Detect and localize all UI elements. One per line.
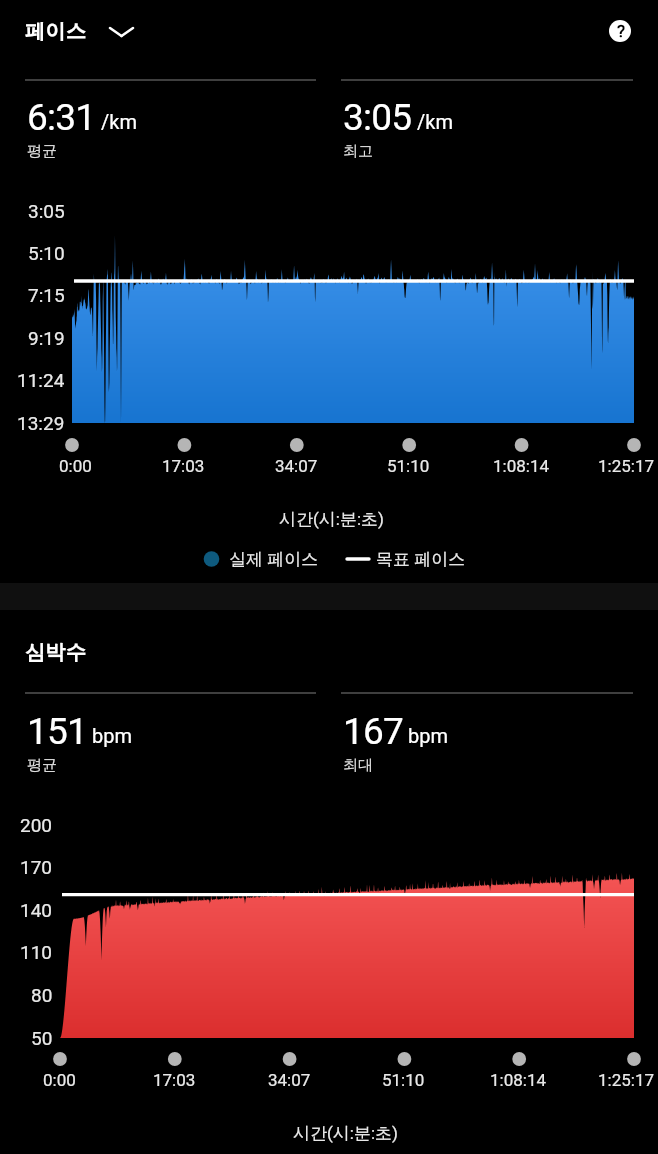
staticText: 목표 페이스 (376, 549, 466, 570)
staticText: 11:24 (17, 369, 65, 391)
staticText: 110 (20, 941, 53, 963)
button[interactable]: Help (598, 9, 642, 53)
staticText: 1:08:14 (493, 456, 550, 476)
staticText: 5:10 (28, 242, 65, 264)
staticText: 17:03 (153, 1070, 196, 1090)
staticText: 200 (20, 814, 53, 836)
staticText: 0:00 (59, 456, 92, 476)
staticText: 17:03 (162, 456, 205, 476)
staticText: 9:19 (28, 327, 65, 349)
staticText: 심박수 (25, 639, 86, 665)
staticText: bpm (408, 724, 448, 747)
staticText: 80 (31, 984, 53, 1006)
button[interactable]: 실제 페이스 (200, 545, 313, 574)
staticText: 34:07 (275, 456, 318, 476)
staticText: 1:25:17 (598, 1070, 655, 1090)
staticText: /km (417, 110, 453, 133)
button[interactable]: 3:05 /km 최고 (341, 88, 633, 166)
button[interactable]: 6:31 /km 평균 (25, 88, 317, 166)
staticText: 34:07 (268, 1070, 311, 1090)
staticText: 최대 (343, 756, 373, 775)
staticText: 140 (20, 899, 53, 921)
staticText: 50 (31, 1027, 53, 1049)
staticText: 페이스 (25, 18, 86, 44)
staticText: 3:05 (28, 200, 65, 222)
staticText: 평균 (27, 142, 57, 161)
staticText: 최고 (343, 142, 373, 161)
button[interactable]: 167 bpm 최대 (341, 702, 633, 780)
button[interactable]: 목표 페이스 (343, 545, 460, 574)
staticText: 시간(시:분:초) (293, 1123, 398, 1144)
button[interactable]: 심박수 (12, 628, 112, 672)
staticText: 13:29 (17, 412, 65, 434)
staticText: 1:08:14 (490, 1070, 547, 1090)
button[interactable]: 151 bpm 평균 (25, 702, 317, 780)
staticText: 170 (20, 856, 53, 878)
staticText: 1:25:17 (598, 456, 655, 476)
staticText: 6:31 (27, 96, 96, 139)
staticText: 시간(시:분:초) (279, 509, 384, 530)
staticText: 3:05 (343, 96, 412, 139)
staticText: 0:00 (43, 1070, 76, 1090)
staticText: ? (617, 21, 626, 41)
staticText: 실제 페이스 (229, 549, 319, 570)
staticText: 167 (343, 710, 403, 753)
staticText: bpm (92, 724, 132, 747)
staticText: 7:15 (28, 284, 65, 306)
staticText: /km (101, 110, 137, 133)
button[interactable]: 페이스 (12, 8, 152, 56)
staticText: 151 (27, 710, 87, 753)
staticText: 평균 (27, 756, 57, 775)
staticText: 51:10 (387, 456, 430, 476)
staticText: 51:10 (382, 1070, 425, 1090)
